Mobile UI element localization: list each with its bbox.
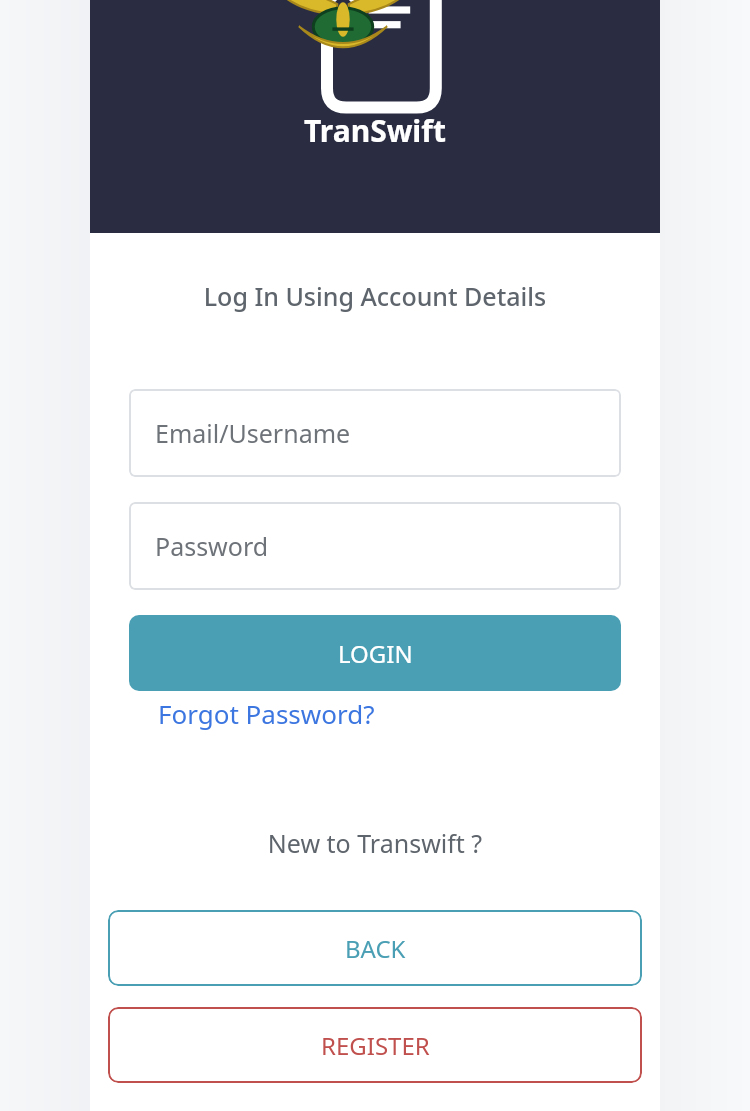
button[interactable]: Password bbox=[129, 502, 621, 590]
other: TranSwift logo bbox=[295, 0, 455, 112]
staticText: Password bbox=[155, 529, 269, 563]
button[interactable]: REGISTER bbox=[108, 1007, 642, 1083]
staticText: Email/Username bbox=[155, 416, 351, 450]
staticText: BACK bbox=[345, 932, 406, 965]
button[interactable]: LOGIN bbox=[129, 615, 621, 691]
button[interactable]: Email/Username bbox=[129, 389, 621, 477]
staticText: Forgot Password? bbox=[158, 696, 375, 731]
button[interactable]: Forgot Password? bbox=[158, 691, 375, 736]
staticText: New to Transwift ? bbox=[90, 826, 660, 860]
staticText: LOGIN bbox=[338, 637, 413, 670]
staticText: Log In Using Account Details bbox=[90, 279, 660, 313]
staticText: REGISTER bbox=[321, 1029, 430, 1062]
button[interactable]: BACK bbox=[108, 910, 642, 986]
staticText: TranSwift bbox=[304, 110, 446, 151]
